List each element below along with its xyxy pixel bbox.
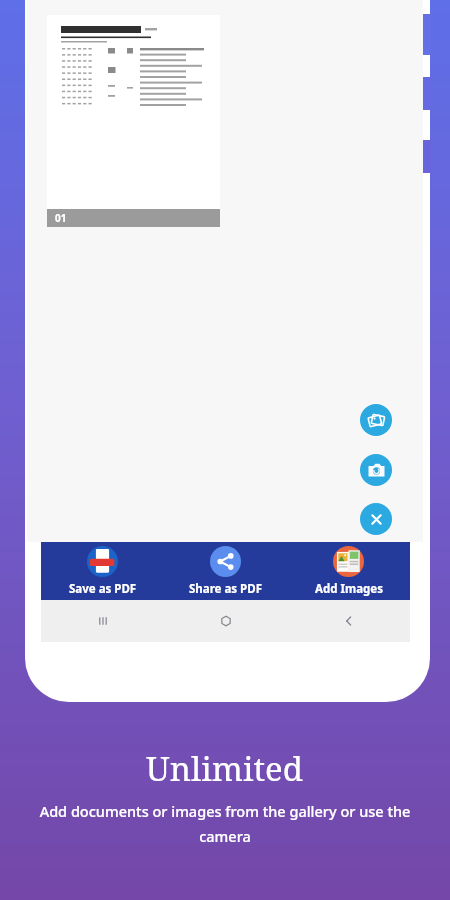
button[interactable]: Close menu xyxy=(360,503,392,535)
staticText: Share as PDF xyxy=(189,581,262,597)
button[interactable]: Save as PDF xyxy=(41,542,164,600)
button[interactable]: Add from gallery xyxy=(360,404,392,436)
staticText: Unlimited xyxy=(146,746,304,791)
button[interactable]: Home xyxy=(164,600,287,642)
staticText: Save as PDF xyxy=(69,581,137,597)
button[interactable]: Add Images xyxy=(287,542,410,600)
staticText: 01 xyxy=(55,211,67,225)
button[interactable]: Take photo xyxy=(360,454,392,486)
button[interactable]: Recent apps xyxy=(41,600,164,642)
staticText: Add Images xyxy=(315,581,383,597)
button[interactable]: Share as PDF xyxy=(164,542,287,600)
staticText: Add documents or images from the gallery… xyxy=(28,801,422,846)
button[interactable]: 01 xyxy=(47,15,220,227)
button[interactable]: Back xyxy=(287,600,410,642)
